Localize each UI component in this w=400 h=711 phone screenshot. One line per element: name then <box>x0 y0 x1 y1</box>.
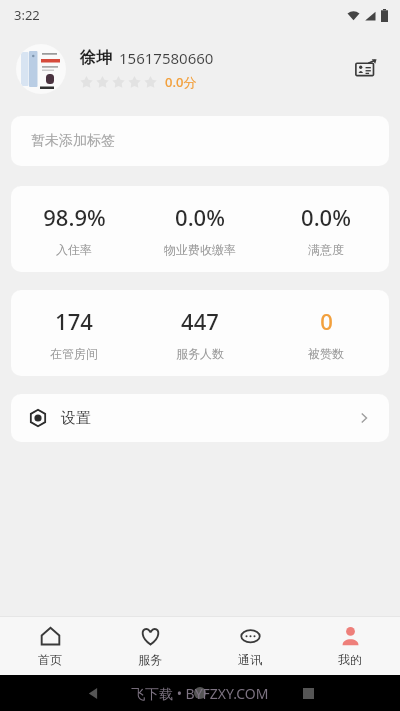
button[interactable]: 通讯 <box>200 617 300 675</box>
staticText: 0 <box>320 306 333 336</box>
button[interactable]: 服务 <box>100 617 200 675</box>
button[interactable]: 0.0% <box>263 186 389 272</box>
staticText: 通讯 <box>238 652 262 667</box>
staticText: 我的 <box>338 652 362 667</box>
staticText: 174 <box>55 306 93 336</box>
button[interactable]: 98.9% <box>11 186 137 272</box>
button[interactable]: 最近任务 <box>293 678 323 708</box>
button[interactable]: 0.0% <box>137 186 263 272</box>
staticText: 入住率 <box>56 242 92 257</box>
staticText: 0.0% <box>175 202 225 232</box>
button[interactable]: 主页 <box>185 678 215 708</box>
staticText: 3:22 <box>14 6 40 24</box>
button[interactable]: 设置 <box>11 394 389 442</box>
staticText: 15617580660 <box>119 48 214 68</box>
staticText: 徐坤 <box>80 48 112 68</box>
button[interactable] <box>16 44 66 94</box>
staticText: 0.0% <box>301 202 351 232</box>
staticText: 服务 <box>138 652 162 667</box>
button[interactable]: 首页 <box>0 617 100 675</box>
staticText: 满意度 <box>308 242 344 257</box>
button[interactable]: 分享名片 <box>348 51 384 87</box>
button[interactable]: 0 <box>263 290 389 376</box>
staticText: 被赞数 <box>308 346 344 361</box>
staticText: 暂未添加标签 <box>31 132 115 150</box>
button[interactable]: 174 <box>11 290 137 376</box>
staticText: 首页 <box>38 652 62 667</box>
staticText: 0.0分 <box>165 73 197 91</box>
staticText: 98.9% <box>43 202 106 232</box>
button[interactable]: 返回 <box>78 678 108 708</box>
staticText: 物业费收缴率 <box>164 242 236 257</box>
staticText: 设置 <box>61 409 91 428</box>
staticText: 在管房间 <box>50 346 98 361</box>
button[interactable]: 我的 <box>300 617 400 675</box>
button[interactable]: 暂未添加标签 <box>11 116 389 166</box>
staticText: 飞下载 • BYFZXY.COM <box>131 684 269 703</box>
staticText: 服务人数 <box>176 346 224 361</box>
button[interactable]: 447 <box>137 290 263 376</box>
staticText: 447 <box>181 306 219 336</box>
